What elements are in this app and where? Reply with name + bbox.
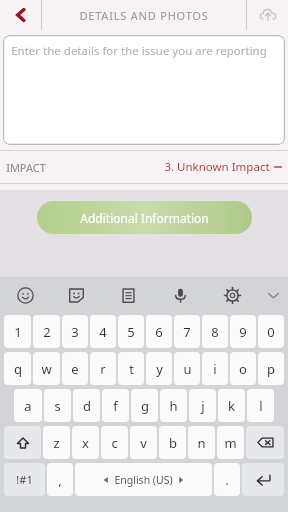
staticText: e bbox=[71, 360, 79, 378]
button[interactable]: q bbox=[4, 352, 31, 385]
button[interactable]: x bbox=[72, 426, 99, 459]
staticText: r bbox=[100, 360, 106, 378]
button[interactable]: l bbox=[247, 389, 274, 422]
button[interactable]: t bbox=[118, 352, 144, 385]
staticText: 9 bbox=[239, 323, 247, 341]
button[interactable]: k bbox=[218, 389, 245, 422]
button[interactable]: English (US) bbox=[75, 463, 212, 496]
staticText: n bbox=[197, 434, 206, 452]
staticText: y bbox=[156, 360, 163, 378]
button[interactable]: Keyboard settings bbox=[206, 277, 258, 313]
staticText: 2 bbox=[43, 323, 51, 341]
staticText: 8 bbox=[211, 323, 219, 341]
button[interactable]: v bbox=[130, 426, 157, 459]
button[interactable]: s bbox=[44, 389, 71, 422]
button[interactable]: . bbox=[214, 463, 240, 496]
button[interactable]: i bbox=[202, 352, 228, 385]
button[interactable]: 3 bbox=[62, 315, 88, 348]
button[interactable]: Upload bbox=[247, 0, 288, 30]
staticText: . bbox=[225, 471, 229, 489]
button[interactable]: f bbox=[102, 389, 129, 422]
button[interactable]: 1 bbox=[4, 315, 31, 348]
button[interactable]: h bbox=[160, 389, 187, 422]
staticText: English (US) bbox=[114, 473, 173, 487]
button[interactable]: u bbox=[174, 352, 200, 385]
staticText: s bbox=[54, 397, 61, 415]
staticText: 0 bbox=[267, 323, 275, 341]
staticText: , bbox=[58, 471, 62, 489]
staticText: c bbox=[111, 434, 118, 452]
button[interactable]: Enter bbox=[242, 463, 284, 496]
button[interactable]: IMPACT bbox=[0, 151, 288, 183]
button[interactable]: c bbox=[101, 426, 128, 459]
staticText: w bbox=[41, 360, 52, 378]
button[interactable]: Enter the details for the issue you are … bbox=[3, 35, 285, 145]
staticText: i bbox=[213, 360, 217, 378]
button[interactable]: Emoji bbox=[0, 277, 51, 313]
staticText: v bbox=[140, 434, 147, 452]
button[interactable]: g bbox=[131, 389, 158, 422]
staticText: d bbox=[83, 397, 91, 415]
button[interactable]: 5 bbox=[118, 315, 144, 348]
staticText: Enter the details for the issue you are … bbox=[11, 43, 267, 59]
staticText: t bbox=[129, 360, 134, 378]
staticText: 1 bbox=[14, 323, 22, 341]
staticText: DETAILS AND PHOTOS bbox=[79, 8, 209, 23]
staticText: l bbox=[259, 397, 263, 415]
button[interactable]: n bbox=[188, 426, 215, 459]
staticText: p bbox=[267, 360, 275, 378]
button[interactable]: w bbox=[33, 352, 60, 385]
button[interactable]: d bbox=[73, 389, 100, 422]
button[interactable]: Back bbox=[0, 0, 41, 30]
button[interactable]: p bbox=[258, 352, 284, 385]
staticText: h bbox=[169, 397, 178, 415]
button[interactable]: 0 bbox=[258, 315, 284, 348]
button[interactable]: 7 bbox=[174, 315, 200, 348]
button[interactable]: Hide keyboard bbox=[258, 277, 288, 313]
staticText: a bbox=[24, 397, 32, 415]
staticText: 6 bbox=[155, 323, 163, 341]
button[interactable]: a bbox=[14, 389, 42, 422]
staticText: f bbox=[113, 397, 118, 415]
staticText: o bbox=[239, 360, 247, 378]
button[interactable]: !#1 bbox=[4, 463, 45, 496]
staticText: u bbox=[183, 360, 192, 378]
button[interactable]: 8 bbox=[202, 315, 228, 348]
staticText: IMPACT bbox=[6, 160, 46, 175]
staticText: z bbox=[53, 434, 60, 452]
button[interactable]: Voice input bbox=[154, 277, 206, 313]
button[interactable]: r bbox=[90, 352, 116, 385]
button[interactable]: m bbox=[217, 426, 244, 459]
button[interactable]: Stickers bbox=[51, 277, 102, 313]
staticText: 5 bbox=[127, 323, 135, 341]
button[interactable]: 4 bbox=[90, 315, 116, 348]
button[interactable]: b bbox=[159, 426, 186, 459]
staticText: q bbox=[14, 360, 22, 378]
staticText: b bbox=[169, 434, 177, 452]
button[interactable]: z bbox=[43, 426, 70, 459]
button[interactable]: , bbox=[47, 463, 73, 496]
staticText: j bbox=[201, 397, 205, 415]
staticText: 3 bbox=[71, 323, 79, 341]
button[interactable]: j bbox=[189, 389, 216, 422]
button[interactable]: e bbox=[62, 352, 88, 385]
button[interactable]: Clipboard bbox=[102, 277, 154, 313]
button[interactable]: 6 bbox=[146, 315, 172, 348]
button[interactable]: y bbox=[146, 352, 172, 385]
button[interactable]: Additional Information bbox=[37, 201, 252, 234]
staticText: x bbox=[82, 434, 89, 452]
button[interactable]: Shift bbox=[4, 426, 41, 459]
staticText: 3. Unknown Impact bbox=[164, 159, 270, 175]
staticText: m bbox=[224, 434, 237, 452]
staticText: g bbox=[141, 397, 149, 415]
button[interactable]: o bbox=[230, 352, 256, 385]
staticText: Additional Information bbox=[80, 210, 209, 226]
staticText: 7 bbox=[183, 323, 191, 341]
button[interactable]: 9 bbox=[230, 315, 256, 348]
staticText: !#1 bbox=[16, 472, 33, 487]
button[interactable]: 2 bbox=[33, 315, 60, 348]
button[interactable]: Backspace bbox=[246, 426, 284, 459]
staticText: k bbox=[228, 397, 235, 415]
staticText: 4 bbox=[99, 323, 107, 341]
